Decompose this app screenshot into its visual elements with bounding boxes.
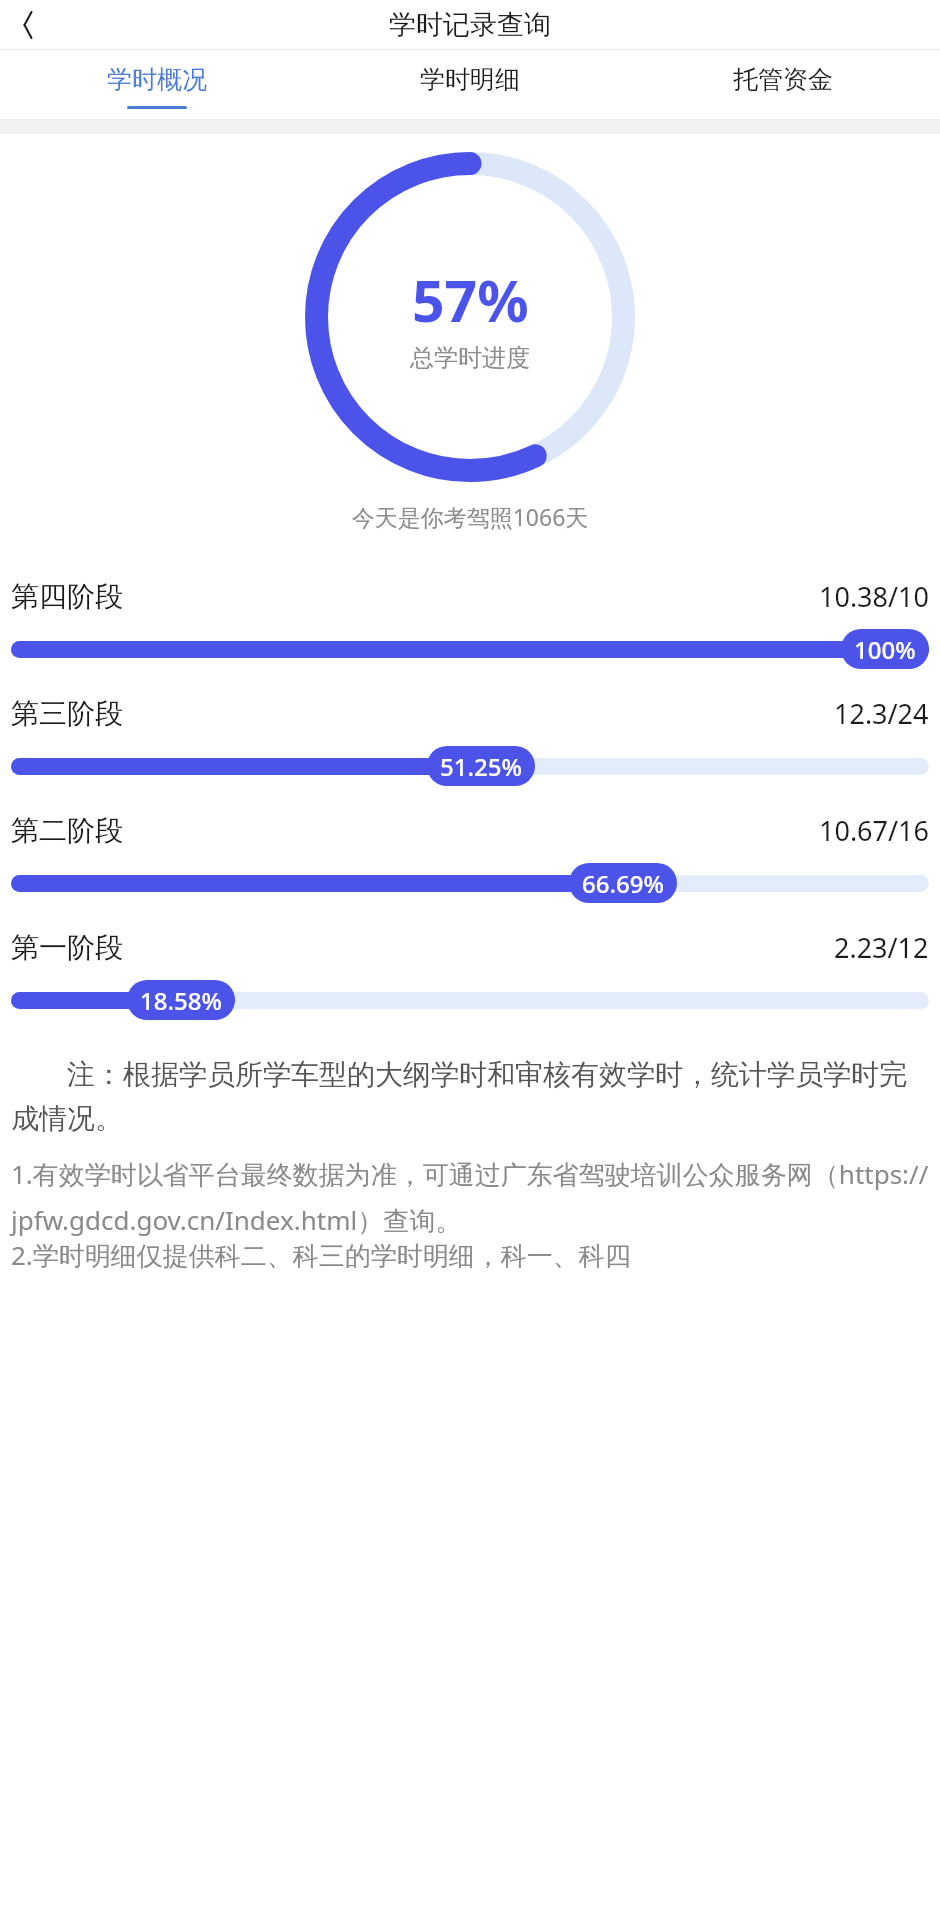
staticText: 学时记录查询: [389, 8, 551, 42]
staticText: 总学时进度: [410, 343, 530, 373]
button[interactable]: 第四阶段: [11, 578, 929, 669]
button[interactable]: 第三阶段: [11, 695, 929, 786]
staticText: 托管资金: [733, 64, 833, 95]
button[interactable]: 学时概况: [67, 50, 247, 109]
staticText: 学时明细: [420, 64, 520, 95]
staticText: 第三阶段: [11, 696, 123, 731]
staticText: 12.3/24: [834, 695, 929, 732]
staticText: 2.23/12: [834, 929, 929, 966]
staticText: 10.38/10: [819, 578, 929, 615]
staticText: 2.学时明细仅提供科二、科三的学时明细，科一、科四: [11, 1237, 631, 1273]
staticText: 1.有效学时以省平台最终数据为准，可通过广东省驾驶培训公众服务网（https:/…: [11, 1156, 929, 1237]
staticText: 66.69%: [582, 867, 664, 900]
staticText: 第一阶段: [11, 930, 123, 965]
button[interactable]: 托管资金: [693, 50, 873, 106]
staticText: 18.58%: [140, 984, 222, 1017]
staticText: 第四阶段: [11, 579, 123, 614]
button[interactable]: Back: [6, 3, 50, 47]
staticText: 注：根据学员所学车型的大纲学时和审核有效学时，统计学员学时完成情况。: [11, 1054, 929, 1136]
staticText: 100%: [854, 633, 916, 666]
staticText: 学时概况: [107, 64, 207, 95]
staticText: 10.67/16: [819, 812, 929, 849]
button[interactable]: 第二阶段: [11, 812, 929, 903]
staticText: 57%: [412, 261, 529, 339]
staticText: 今天是你考驾照1066天: [0, 501, 940, 532]
button[interactable]: 学时明细: [380, 50, 560, 106]
staticText: 第二阶段: [11, 813, 123, 848]
button[interactable]: 第一阶段: [11, 929, 929, 1020]
staticText: 51.25%: [440, 750, 522, 783]
